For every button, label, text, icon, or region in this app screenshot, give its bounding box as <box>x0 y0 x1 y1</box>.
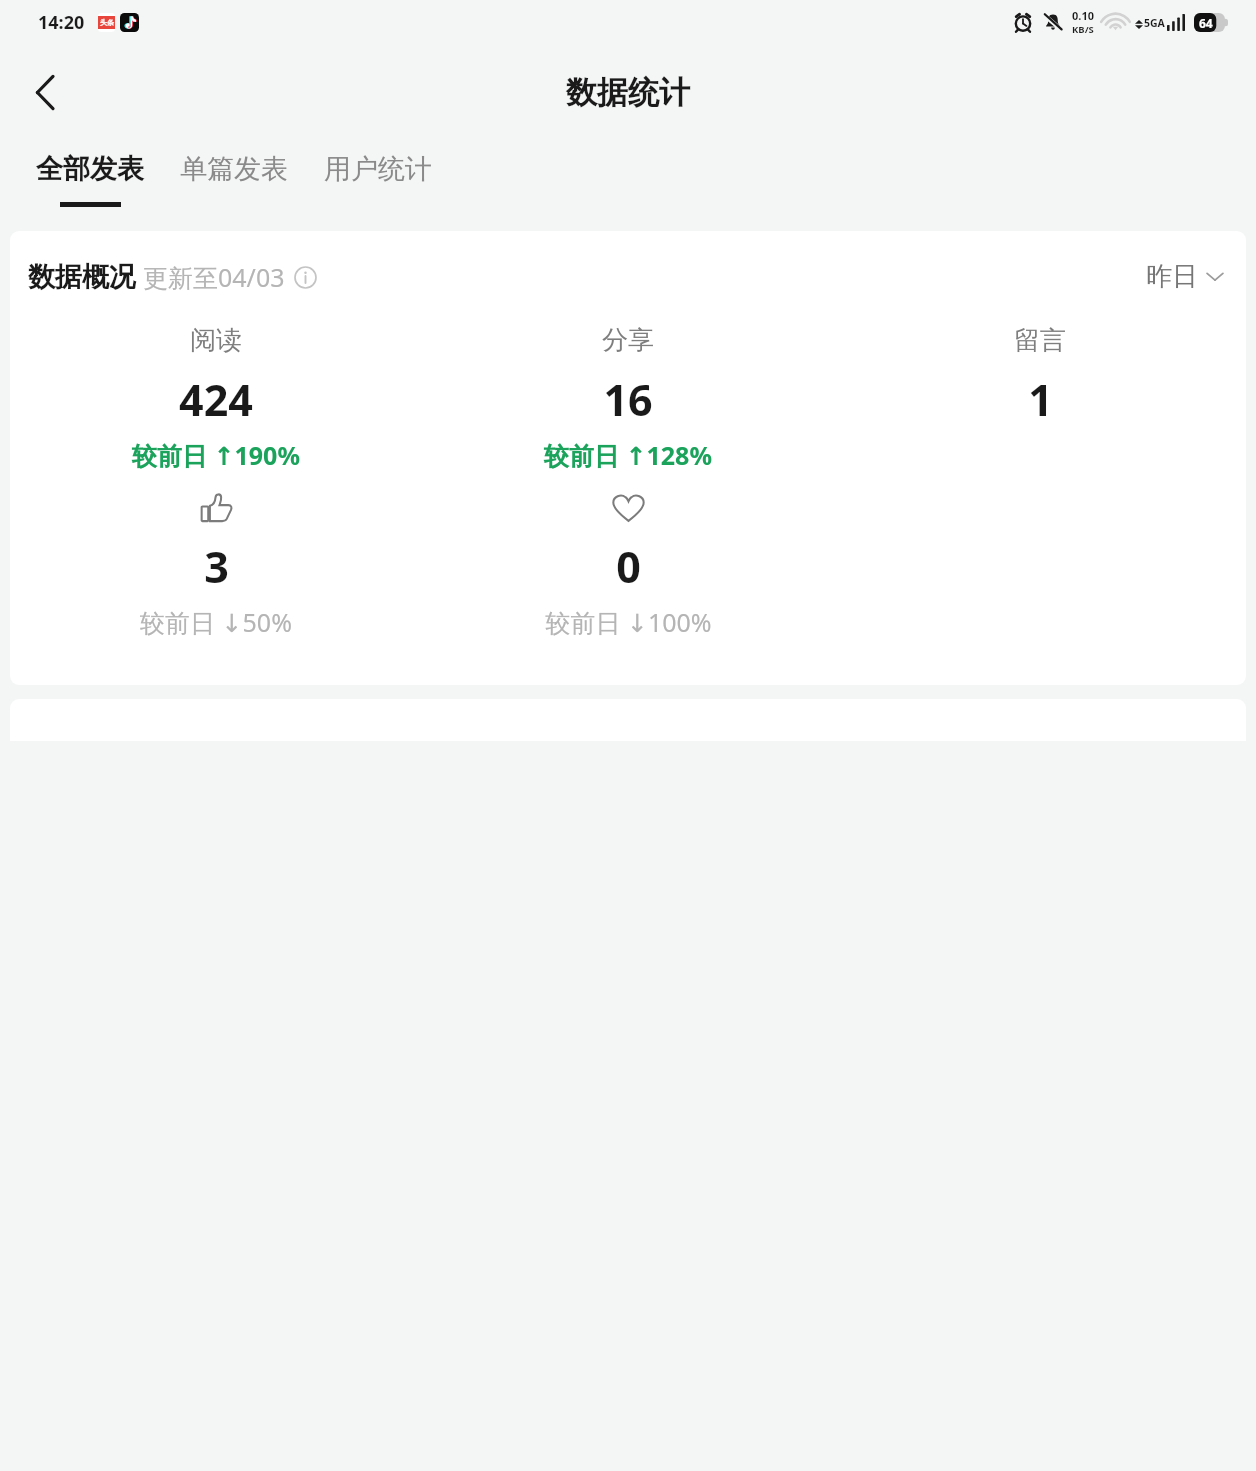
button[interactable]: 昨日 <box>1142 256 1228 297</box>
staticText: 较前日 ↑190% <box>132 438 300 472</box>
staticText: 较前日 ↑128% <box>544 438 712 472</box>
staticText: 阅读 <box>190 324 242 357</box>
staticText: 分享 <box>602 324 654 357</box>
button[interactable]: 分享 <box>422 322 834 474</box>
button[interactable]: 单篇发表 <box>162 144 306 215</box>
staticText: 424 <box>179 370 253 429</box>
staticText: 昨日 <box>1146 260 1198 293</box>
staticText: 留言 <box>1014 324 1066 357</box>
staticText: 14:20 <box>38 10 85 35</box>
staticText: 用户统计 <box>324 152 432 186</box>
staticText: 3 <box>204 537 229 596</box>
staticText: 数据概况 <box>28 260 136 294</box>
staticText: 更新至04/03 <box>143 260 285 294</box>
button[interactable]: Back <box>14 61 76 123</box>
button[interactable]: Favorites <box>422 488 834 641</box>
staticText: 16 <box>603 370 653 429</box>
staticText: 单篇发表 <box>180 152 288 186</box>
other: Likes <box>200 492 233 524</box>
staticText: 较前日 ↓100% <box>545 605 712 639</box>
staticText: 全部发表 <box>36 152 144 186</box>
staticText: 0.10 <box>1072 8 1094 23</box>
staticText: 64 <box>1199 15 1213 31</box>
staticText: 1 <box>1028 370 1053 429</box>
staticText: 5GA <box>1144 16 1165 30</box>
button[interactable]: 全部发表 <box>18 144 162 215</box>
staticText: 0 <box>616 537 641 596</box>
staticText: 数据统计 <box>566 73 690 112</box>
staticText: 头条 <box>100 18 114 27</box>
staticText: 较前日 ↓50% <box>140 605 292 639</box>
button[interactable]: 阅读 <box>10 322 422 474</box>
button[interactable]: Info <box>292 264 318 290</box>
button[interactable]: 留言 <box>834 322 1246 474</box>
button[interactable]: Likes <box>10 488 422 641</box>
staticText: KB/S <box>1072 23 1094 36</box>
other: Favorites <box>612 493 645 523</box>
button[interactable]: 用户统计 <box>306 144 450 215</box>
